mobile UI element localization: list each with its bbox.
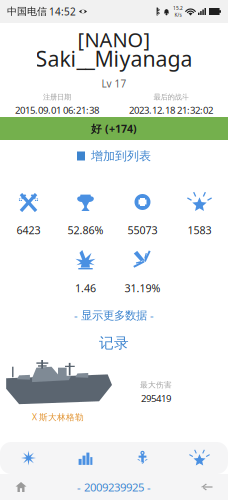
button[interactable]: Statistics — [57, 442, 114, 474]
staticText: 好 (+174) — [91, 121, 137, 136]
staticText: 55073 — [127, 223, 157, 237]
button[interactable]: Ships — [114, 442, 171, 474]
button[interactable]: Home — [0, 474, 42, 500]
staticText: 中国电信 — [7, 5, 47, 18]
staticText: 31.19% — [124, 281, 160, 295]
staticText: 15.2 — [173, 5, 183, 11]
button[interactable]: - 显示更多数据 - — [0, 300, 228, 330]
staticText: [NANO] — [77, 26, 150, 53]
staticText: 295419 — [141, 392, 171, 405]
staticText: 最大伤害 — [140, 380, 172, 390]
button[interactable]: Back — [186, 474, 228, 500]
staticText: 1583 — [187, 223, 211, 237]
staticText: K/s — [174, 11, 181, 18]
staticText: X 斯大林格勒 — [32, 411, 84, 423]
staticText: 14:52 — [49, 5, 76, 18]
staticText: 1.46 — [75, 281, 96, 295]
staticText: 2023.12.18 21:32:02 — [129, 104, 213, 117]
staticText: 注册日期 — [43, 92, 71, 101]
button[interactable]: 增加到列表 — [0, 140, 228, 172]
staticText: Saki__Miyanaga — [35, 44, 192, 73]
button[interactable]: Achievements — [171, 442, 228, 474]
button[interactable]: Overview — [0, 442, 57, 474]
staticText: 52.86% — [67, 223, 103, 237]
staticText: - 显示更多数据 - — [74, 307, 154, 323]
staticText: 记录 — [99, 334, 129, 352]
staticText: 增加到列表 — [91, 148, 151, 163]
staticText: 6423 — [16, 223, 40, 237]
staticText: 最后的战斗 — [153, 92, 188, 101]
staticText: Lv 17 — [101, 77, 126, 90]
staticText: 2015.09.01 06:21:38 — [15, 104, 99, 117]
staticText: - 2009239925 - — [77, 479, 151, 495]
